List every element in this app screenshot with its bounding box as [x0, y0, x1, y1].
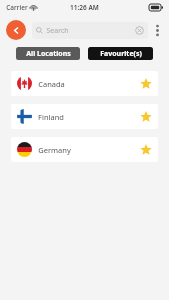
staticText: 11:26 AM — [70, 3, 99, 12]
button[interactable]: Favourite Canada — [139, 77, 152, 90]
button[interactable]: Favourite Finland — [139, 110, 152, 123]
button[interactable]: Clear search — [135, 26, 144, 35]
button[interactable]: Back — [6, 20, 26, 40]
button[interactable]: Finland — [11, 104, 158, 129]
button[interactable]: Germany — [11, 137, 158, 162]
staticText: All Locations — [26, 49, 71, 59]
button[interactable]: Canada — [11, 71, 158, 96]
staticText: Germany — [38, 145, 71, 155]
button[interactable]: All Locations — [16, 47, 80, 60]
staticText: Carrier — [6, 3, 28, 12]
staticText: Favourite(s) — [100, 49, 142, 59]
staticText: Finland — [38, 112, 64, 122]
button[interactable]: More options — [151, 21, 163, 39]
staticText: Search — [46, 26, 69, 36]
button[interactable]: Favourite Germany — [139, 143, 152, 156]
button[interactable]: Search — [32, 22, 148, 39]
button[interactable]: Favourite(s) — [88, 47, 153, 60]
staticText: Canada — [38, 79, 65, 89]
